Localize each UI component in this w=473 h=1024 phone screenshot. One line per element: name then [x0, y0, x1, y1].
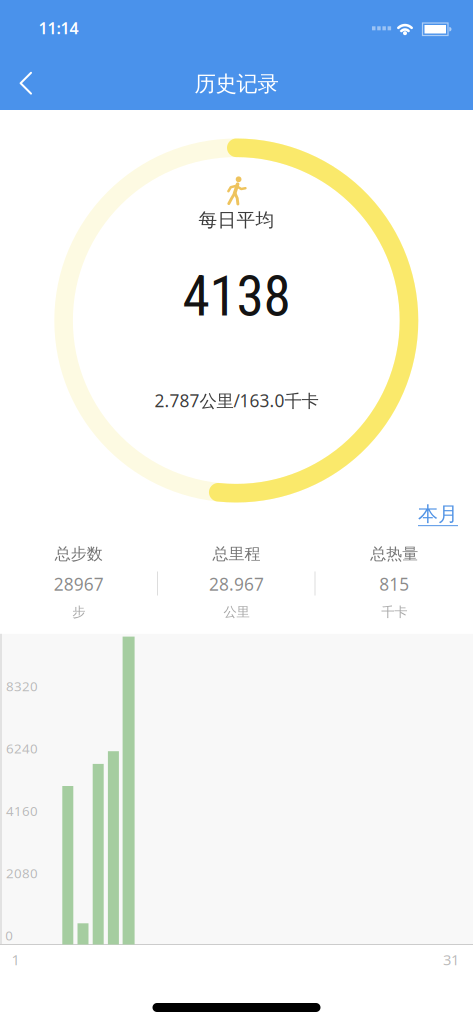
- staticText: 公里: [223, 604, 249, 620]
- staticText: 0: [5, 926, 13, 944]
- staticText: 每日平均: [198, 208, 274, 231]
- staticText: 总步数: [55, 544, 103, 564]
- staticText: 本月: [418, 502, 458, 526]
- staticText: 815: [379, 572, 409, 595]
- staticText: 2.787公里/163.0千卡: [154, 389, 318, 412]
- button[interactable]: 本月: [418, 502, 458, 526]
- staticText: 总热量: [370, 544, 418, 564]
- staticText: 步: [72, 604, 85, 620]
- staticText: 4160: [6, 802, 38, 820]
- staticText: 8320: [6, 677, 38, 695]
- staticText: 31: [443, 950, 459, 969]
- staticText: 4138: [182, 264, 290, 329]
- staticText: 28967: [54, 572, 104, 595]
- staticText: 11:14: [38, 17, 78, 39]
- staticText: 总里程: [212, 544, 260, 564]
- button[interactable]: Back: [4, 61, 48, 105]
- staticText: 6240: [6, 739, 38, 757]
- staticText: 历史记录: [194, 71, 278, 97]
- staticText: 1: [11, 950, 19, 969]
- staticText: 28.967: [209, 572, 264, 595]
- staticText: 千卡: [381, 604, 407, 620]
- staticText: 2080: [6, 864, 38, 882]
